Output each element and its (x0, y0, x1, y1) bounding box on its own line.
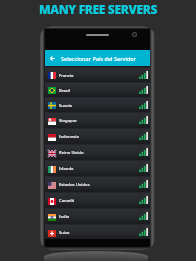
button[interactable]: Back (45, 50, 59, 66)
staticText: Estados Unidos (59, 182, 90, 188)
button[interactable]: Back (45, 50, 150, 66)
staticText: Francia (59, 73, 74, 79)
button[interactable]: Canadá (45, 191, 150, 207)
staticText: Suiza (59, 230, 70, 236)
staticText: Irlanda (59, 166, 74, 172)
staticText: Canadá (59, 198, 75, 204)
button[interactable]: Brasil (45, 81, 150, 96)
staticText: Reino Unido (59, 150, 84, 156)
button[interactable]: Singapur (45, 111, 150, 127)
button[interactable]: Estados Unidos (45, 175, 150, 191)
staticText: Indonesia (59, 134, 79, 140)
button[interactable]: Francia (45, 66, 150, 81)
button[interactable]: Indonesia (45, 127, 150, 143)
button[interactable]: India (45, 207, 150, 223)
button[interactable]: Reino Unido (45, 143, 150, 159)
staticText: Seleccionar País del Servidor (61, 55, 136, 62)
staticText: India (59, 214, 70, 220)
button[interactable]: Irlanda (45, 159, 150, 175)
staticText: Singapur (59, 118, 78, 124)
button[interactable]: Suecia (45, 96, 150, 111)
button[interactable]: Suiza (45, 223, 150, 239)
staticText: MANY FREE SERVERS (0, 1, 196, 17)
staticText: Suecia (59, 103, 72, 109)
staticText: Brasil (59, 88, 71, 94)
